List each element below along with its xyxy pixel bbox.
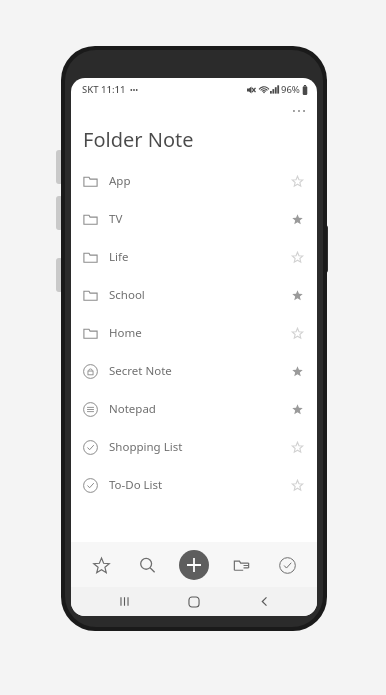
button[interactable]: Secret Note: [71, 352, 317, 390]
button[interactable]: Notepad: [71, 390, 317, 428]
button[interactable]: Home: [177, 587, 211, 616]
button[interactable]: Favorite Life: [285, 245, 309, 269]
button[interactable]: To-Do List: [71, 466, 317, 504]
button[interactable]: Favorite Home: [285, 321, 309, 345]
staticText: Secret Note: [109, 363, 172, 379]
button[interactable]: Unfavorite Notepad: [285, 397, 309, 421]
button[interactable]: Favorite Shopping List: [285, 435, 309, 459]
button[interactable]: Home: [71, 314, 317, 352]
button[interactable]: Recents: [107, 587, 141, 616]
button[interactable]: School: [71, 276, 317, 314]
staticText: App: [109, 173, 131, 189]
staticText: 96%: [281, 83, 300, 96]
button[interactable]: Add: [171, 542, 217, 587]
staticText: Life: [109, 249, 129, 265]
staticText: TV: [109, 211, 123, 227]
button[interactable]: More options: [288, 100, 310, 122]
button[interactable]: Shopping List: [71, 428, 317, 466]
button[interactable]: TV: [71, 200, 317, 238]
staticText: School: [109, 287, 145, 303]
button[interactable]: Back: [247, 587, 281, 616]
button[interactable]: Favorites: [80, 544, 122, 586]
staticText: Shopping List: [109, 439, 183, 455]
staticText: Notepad: [109, 401, 156, 417]
button[interactable]: Unfavorite School: [285, 283, 309, 307]
staticText: Folder Note: [83, 126, 194, 153]
button[interactable]: Folders: [220, 544, 262, 586]
button[interactable]: Unfavorite Secret Note: [285, 359, 309, 383]
button[interactable]: Favorite App: [285, 169, 309, 193]
staticText: To-Do List: [109, 477, 163, 493]
button[interactable]: App: [71, 162, 317, 200]
button[interactable]: Unfavorite TV: [285, 207, 309, 231]
staticText: SKT 11:11: [82, 83, 126, 96]
button[interactable]: Favorite To-Do List: [285, 473, 309, 497]
button[interactable]: Life: [71, 238, 317, 276]
button[interactable]: Search: [126, 544, 168, 586]
staticText: Home: [109, 325, 142, 341]
button[interactable]: Tasks: [266, 544, 308, 586]
